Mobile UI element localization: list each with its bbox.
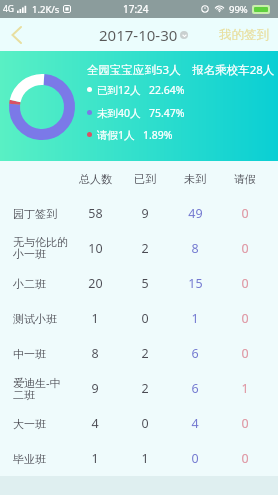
staticText: 6 <box>191 380 199 397</box>
staticText: 10 <box>88 240 103 257</box>
staticText: 49 <box>188 205 203 222</box>
staticText: 5 <box>141 275 149 292</box>
staticText: 无与伦比的 小一班 <box>13 235 68 262</box>
staticText: 0 <box>241 345 249 362</box>
staticText: 58 <box>88 205 103 222</box>
button[interactable]: 大一班 <box>0 406 278 441</box>
staticText: 园丁签到 <box>13 207 57 221</box>
staticText: 全园宝宝应到53人 报名乘校车28人 <box>87 62 275 78</box>
button[interactable]: 小二班 <box>0 266 278 301</box>
staticText: 4 <box>91 415 99 432</box>
staticText: 75.47% <box>149 106 185 119</box>
staticText: 1.2K/s <box>32 3 60 16</box>
button[interactable]: 我的签到 <box>209 18 278 51</box>
staticText: 请假1人 <box>97 128 135 141</box>
staticText: 我的签到 <box>219 27 269 43</box>
staticText: 0 <box>241 310 249 327</box>
staticText: 1 <box>91 450 99 467</box>
staticText: 未到40人 <box>97 106 141 119</box>
staticText: 未到 <box>184 172 206 186</box>
button[interactable]: 中一班 <box>0 336 278 371</box>
staticText: 6 <box>191 345 199 362</box>
staticText: 2 <box>141 380 149 397</box>
staticText: 1 <box>91 310 99 327</box>
staticText: 9 <box>91 380 99 397</box>
staticText: 中一班 <box>13 347 46 361</box>
staticText: 已到 <box>134 172 156 186</box>
staticText: 1 <box>241 380 249 397</box>
staticText: 4G <box>3 3 15 15</box>
staticText: 99% <box>229 3 248 16</box>
staticText: 15 <box>188 275 203 292</box>
staticText: 8 <box>91 345 99 362</box>
staticText: 0 <box>141 310 149 327</box>
staticText: 0 <box>241 205 249 222</box>
button[interactable]: 园丁签到 <box>0 196 278 231</box>
staticText: 2017-10-30 <box>99 25 178 45</box>
button[interactable]: Back <box>0 18 33 51</box>
staticText: 测试小班 <box>13 312 57 326</box>
staticText: 1.89% <box>143 128 173 141</box>
button[interactable]: 2017-10-30 <box>99 25 188 45</box>
staticText: 0 <box>141 415 149 432</box>
staticText: 9 <box>141 205 149 222</box>
staticText: 爱迪生-中 二班 <box>13 375 61 403</box>
button[interactable]: 测试小班 <box>0 301 278 336</box>
staticText: 大一班 <box>13 417 46 431</box>
staticText: 总人数 <box>79 172 112 186</box>
staticText: 已到12人 <box>97 83 141 96</box>
button[interactable]: 毕业班 <box>0 441 278 476</box>
staticText: 0 <box>241 450 249 467</box>
button[interactable]: 爱迪生-中 二班 <box>0 371 278 406</box>
staticText: 4 <box>191 415 199 432</box>
staticText: 0 <box>241 415 249 432</box>
staticText: 17:24 <box>123 2 149 16</box>
staticText: 1 <box>141 450 149 467</box>
staticText: 20 <box>88 275 103 292</box>
staticText: 2 <box>141 240 149 257</box>
staticText: 小二班 <box>13 277 46 291</box>
staticText: 2 <box>141 345 149 362</box>
staticText: 请假 <box>234 172 256 186</box>
staticText: 毕业班 <box>13 452 46 466</box>
staticText: 0 <box>191 450 199 467</box>
button[interactable]: 无与伦比的 小一班 <box>0 231 278 266</box>
staticText: 0 <box>241 275 249 292</box>
staticText: 0 <box>241 240 249 257</box>
staticText: 8 <box>191 240 199 257</box>
staticText: 1 <box>191 310 199 327</box>
staticText: 22.64% <box>149 83 185 96</box>
